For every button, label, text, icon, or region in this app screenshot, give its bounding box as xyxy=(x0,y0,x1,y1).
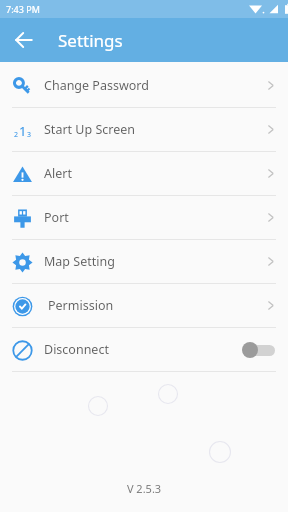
staticText: 3 xyxy=(27,130,32,140)
staticText: 1 xyxy=(19,122,27,140)
staticText: Change Password xyxy=(44,77,149,94)
button[interactable]: Alert xyxy=(0,152,288,195)
button[interactable]: Back xyxy=(7,23,41,57)
button[interactable]: Port xyxy=(0,196,288,239)
staticText: Map Setting xyxy=(44,253,115,270)
staticText: Port xyxy=(44,209,69,226)
staticText: Settings xyxy=(58,29,123,52)
staticText: Alert xyxy=(44,165,72,182)
staticText: Permission xyxy=(48,297,114,314)
button[interactable]: 2 xyxy=(0,108,288,151)
staticText: V 2.5.3 xyxy=(0,481,288,496)
button[interactable]: Disconnect xyxy=(0,328,288,371)
staticText: 7:43 PM xyxy=(6,3,40,15)
staticText: Disconnect xyxy=(44,341,109,358)
button[interactable]: Change Password xyxy=(0,64,288,107)
button[interactable]: Permission xyxy=(0,284,288,327)
button[interactable]: Map Setting xyxy=(0,240,288,283)
staticText: Start Up Screen xyxy=(44,121,135,138)
staticText: 2 xyxy=(14,130,19,140)
